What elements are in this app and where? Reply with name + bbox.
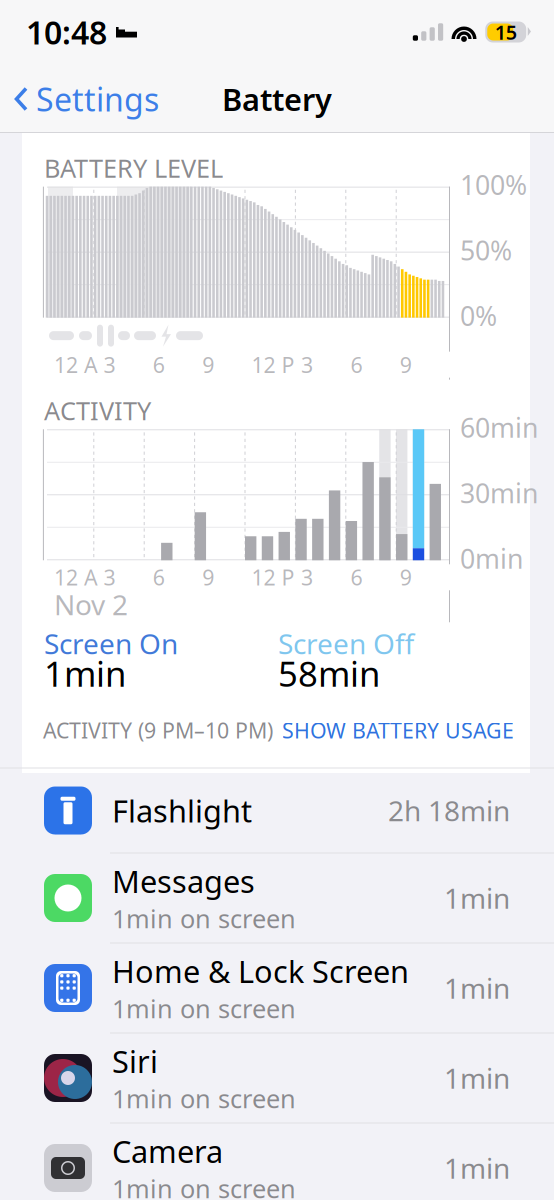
staticText: 0min: [460, 541, 523, 576]
staticText: Settings: [36, 78, 159, 120]
staticText: 60min: [460, 410, 538, 445]
button[interactable]: Messages: [0, 853, 554, 942]
staticText: Siri: [112, 1041, 158, 1081]
staticText: 6: [153, 350, 165, 379]
staticText: 1min: [444, 1059, 510, 1097]
staticText: 58min: [278, 650, 380, 696]
staticText: 3: [103, 350, 115, 379]
staticText: 12 P: [252, 563, 295, 591]
staticText: 0%: [460, 298, 497, 333]
staticText: Flashlight: [112, 790, 252, 831]
staticText: 1min: [444, 879, 510, 917]
staticText: 1min: [444, 1149, 510, 1187]
staticText: 12 P: [252, 350, 295, 379]
staticText: 15: [495, 19, 517, 45]
staticText: Battery: [222, 79, 332, 119]
staticText: 1min on screen: [112, 1171, 296, 1200]
button[interactable]: Settings: [0, 69, 169, 129]
staticText: 1min on screen: [112, 901, 296, 935]
staticText: 1min on screen: [112, 991, 296, 1025]
staticText: 1min: [444, 969, 510, 1007]
staticText: BATTERY LEVEL: [44, 151, 223, 185]
staticText: 100%: [460, 167, 527, 202]
staticText: 2h 18min: [388, 792, 510, 829]
button[interactable]: Home & Lock Screen: [0, 943, 554, 1032]
staticText: 3: [103, 563, 115, 591]
staticText: 1min: [44, 650, 126, 696]
button[interactable]: Camera: [0, 1123, 554, 1200]
staticText: 12 A: [54, 563, 98, 591]
staticText: Nov 2: [54, 586, 128, 623]
staticText: 12 A: [54, 350, 98, 379]
staticText: 6: [153, 563, 165, 591]
staticText: 6: [350, 350, 362, 379]
staticText: 1min on screen: [112, 1081, 296, 1115]
staticText: SHOW BATTERY USAGE: [282, 716, 514, 744]
staticText: 9: [202, 563, 214, 591]
staticText: Camera: [112, 1131, 223, 1171]
staticText: 30min: [460, 475, 538, 510]
staticText: Screen Off: [278, 625, 414, 662]
staticText: 10:48: [26, 11, 107, 53]
staticText: 50%: [460, 232, 512, 268]
staticText: 3: [301, 563, 313, 591]
staticText: 3: [301, 350, 313, 379]
staticText: 9: [400, 563, 412, 591]
staticText: Screen On: [44, 625, 178, 662]
button[interactable]: SHOW BATTERY USAGE: [282, 716, 514, 744]
staticText: 6: [350, 563, 362, 591]
staticText: Home & Lock Screen: [112, 951, 409, 991]
button[interactable]: Siri: [0, 1033, 554, 1122]
staticText: 9: [400, 350, 412, 379]
staticText: ACTIVITY (9 PM–10 PM): [43, 716, 273, 744]
staticText: 9: [202, 350, 214, 379]
button[interactable]: Flashlight: [0, 768, 554, 852]
staticText: ACTIVITY: [44, 394, 151, 427]
staticText: Messages: [112, 861, 255, 901]
